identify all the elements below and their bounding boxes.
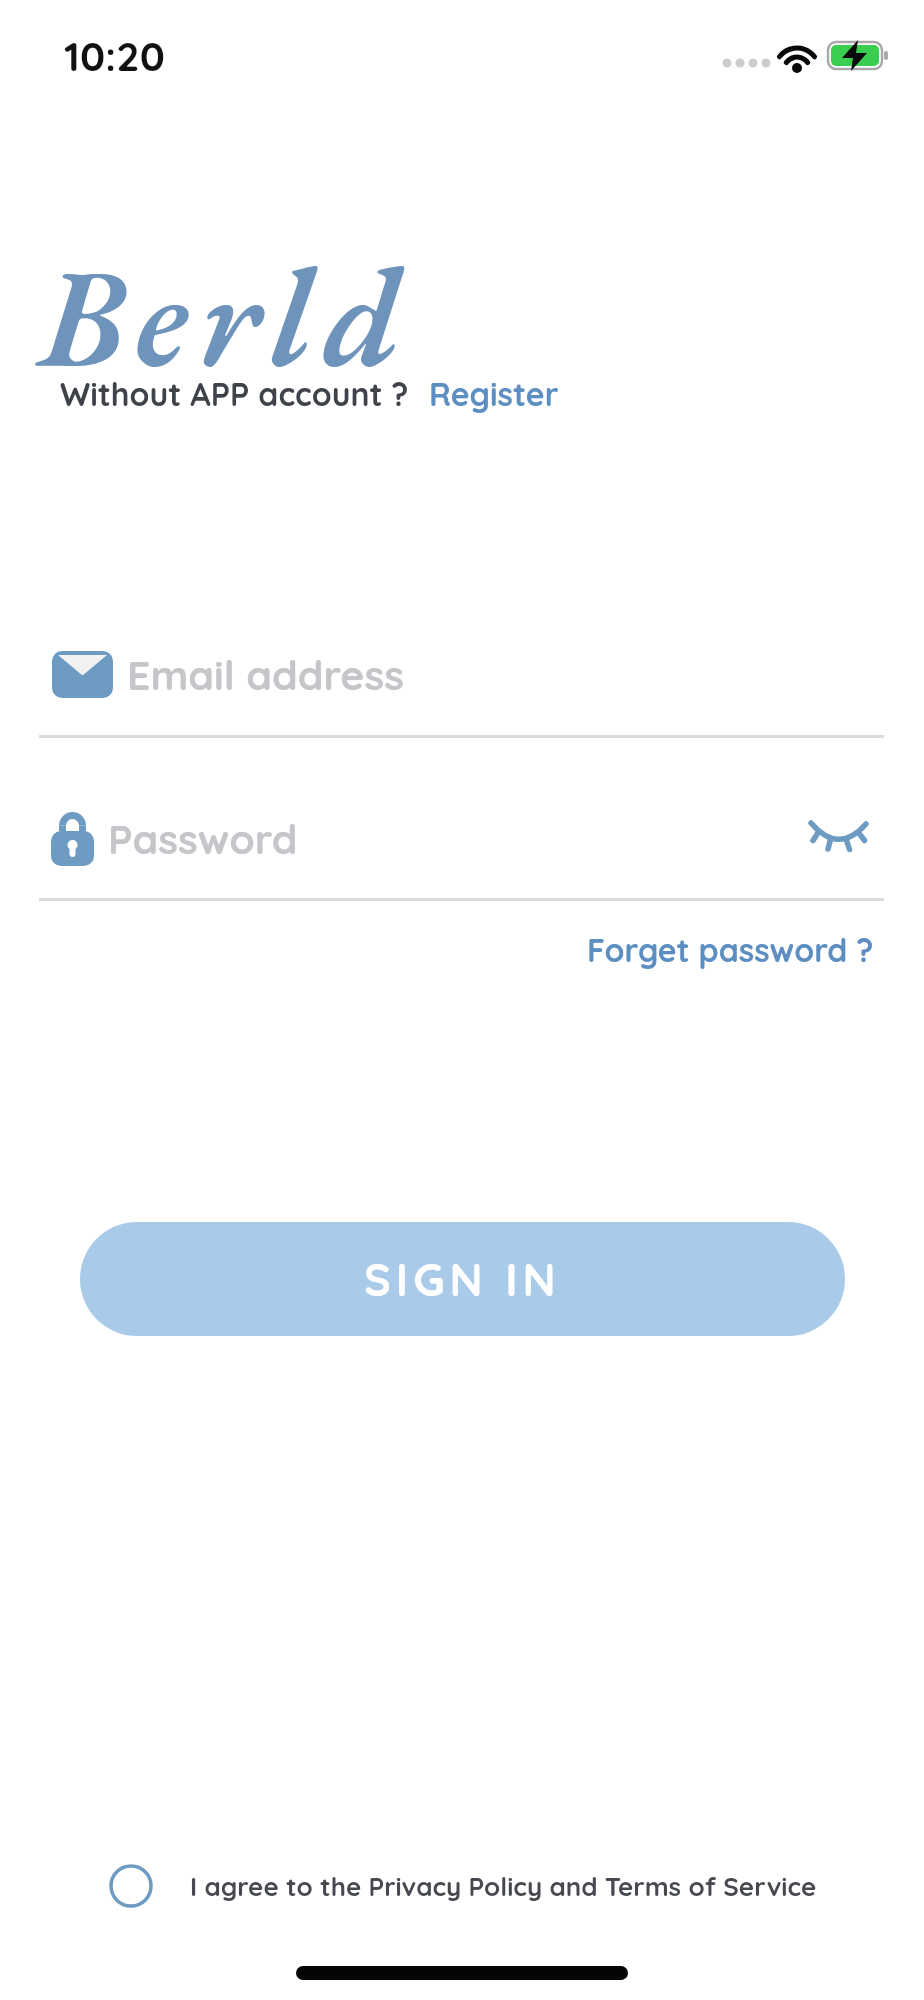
staticText: Register bbox=[429, 374, 559, 414]
button[interactable]: Without APP account ? bbox=[60, 374, 559, 414]
staticText: SIGN IN bbox=[364, 1251, 561, 1307]
button[interactable]: I agree to the Privacy Policy and Terms … bbox=[109, 1864, 817, 1908]
staticText: Password bbox=[108, 813, 298, 864]
button[interactable]: SIGN IN bbox=[80, 1222, 845, 1336]
staticText: 10:20 bbox=[64, 30, 165, 81]
staticText: I agree to the Privacy Policy and Terms … bbox=[190, 1870, 817, 1903]
staticText: Berld bbox=[40, 224, 412, 407]
staticText: Without APP account ? bbox=[60, 374, 409, 414]
button[interactable] bbox=[808, 822, 869, 856]
staticText: Forget password ? bbox=[587, 930, 874, 970]
staticText: Email address bbox=[127, 649, 405, 700]
button[interactable]: Forget password ? bbox=[587, 930, 874, 970]
